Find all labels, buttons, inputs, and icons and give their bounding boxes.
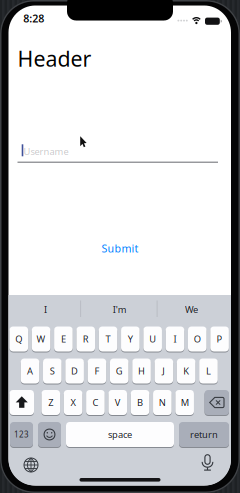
button[interactable]: space xyxy=(66,421,174,447)
staticText: Y xyxy=(128,333,133,345)
button[interactable]: H xyxy=(132,358,151,384)
button[interactable]: M xyxy=(175,389,194,415)
button[interactable]: X xyxy=(64,389,82,415)
button[interactable]: A xyxy=(21,358,39,384)
button[interactable]: W xyxy=(32,326,50,352)
staticText: Z xyxy=(48,396,53,409)
staticText: V xyxy=(115,396,121,409)
staticText: return xyxy=(190,428,218,441)
staticText: J xyxy=(162,365,165,377)
button[interactable]: P xyxy=(210,326,229,352)
staticText: S xyxy=(50,365,55,377)
staticText: We xyxy=(185,303,198,315)
button[interactable]: Emoji xyxy=(38,421,61,447)
staticText: K xyxy=(183,365,189,377)
staticText: P xyxy=(217,333,223,345)
staticText: X xyxy=(71,396,76,409)
staticText: Header xyxy=(17,44,91,73)
button[interactable]: I xyxy=(166,326,184,352)
staticText: 8:28 xyxy=(23,11,44,25)
button[interactable]: 123 xyxy=(10,421,33,447)
staticText: I xyxy=(44,303,47,315)
button[interactable]: T xyxy=(99,326,117,352)
button[interactable]: B xyxy=(131,389,149,415)
staticText: U xyxy=(149,333,156,345)
button[interactable]: Username xyxy=(17,134,218,164)
button[interactable]: E xyxy=(54,326,73,352)
button[interactable]: I xyxy=(10,297,80,321)
staticText: Submit xyxy=(101,241,138,255)
staticText: G xyxy=(116,365,123,377)
button[interactable]: Next keyboard xyxy=(20,454,42,476)
button[interactable]: O xyxy=(188,326,207,352)
staticText: A xyxy=(27,365,33,377)
button[interactable]: Delete xyxy=(204,389,229,415)
button[interactable]: K xyxy=(177,358,195,384)
button[interactable]: L xyxy=(199,358,218,384)
button[interactable]: I'm xyxy=(85,297,155,321)
staticText: B xyxy=(137,396,143,409)
button[interactable]: N xyxy=(153,389,172,415)
button[interactable]: J xyxy=(155,358,173,384)
button[interactable]: We xyxy=(156,297,226,321)
staticText: Q xyxy=(15,333,22,345)
button[interactable]: C xyxy=(86,389,105,415)
staticText: L xyxy=(206,365,211,377)
button[interactable]: Q xyxy=(9,326,28,352)
button[interactable]: F xyxy=(88,358,106,384)
button[interactable]: D xyxy=(65,358,84,384)
staticText: Username xyxy=(23,145,68,157)
staticText: F xyxy=(94,365,99,377)
staticText: M xyxy=(181,396,189,409)
staticText: T xyxy=(105,333,110,345)
button[interactable]: Dictate xyxy=(196,452,218,474)
staticText: E xyxy=(61,333,66,345)
staticText: N xyxy=(159,396,166,409)
staticText: 123 xyxy=(14,429,29,440)
staticText: R xyxy=(83,333,89,345)
staticText: D xyxy=(71,365,78,377)
button[interactable]: G xyxy=(110,358,128,384)
staticText: space xyxy=(108,428,132,441)
button[interactable]: R xyxy=(76,326,95,352)
button[interactable]: S xyxy=(43,358,62,384)
staticText: C xyxy=(92,396,98,409)
staticText: I'm xyxy=(113,303,127,315)
button[interactable]: Shift xyxy=(9,389,34,415)
button[interactable]: U xyxy=(143,326,162,352)
button[interactable]: Z xyxy=(41,389,60,415)
staticText: I xyxy=(173,333,176,345)
staticText: H xyxy=(138,365,145,377)
button[interactable]: return xyxy=(179,421,229,447)
button[interactable]: V xyxy=(108,389,127,415)
staticText: W xyxy=(37,333,46,345)
button[interactable]: Submit xyxy=(90,238,150,258)
staticText: O xyxy=(194,333,201,345)
button[interactable]: Y xyxy=(121,326,140,352)
